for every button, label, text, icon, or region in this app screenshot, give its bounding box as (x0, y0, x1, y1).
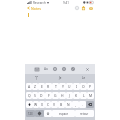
staticText: . (82, 102, 83, 107)
button[interactable]: Format (43, 66, 49, 72)
staticText: L (83, 93, 85, 98)
staticText: R (47, 84, 50, 89)
staticText: O (82, 84, 85, 89)
button[interactable] (44, 110, 52, 117)
staticText: P (89, 84, 92, 89)
button[interactable]: . (79, 101, 86, 108)
staticText: Le (82, 76, 86, 80)
staticText: F (48, 93, 50, 98)
button[interactable]: Close (84, 66, 90, 72)
button[interactable]: Camera (70, 66, 76, 72)
button[interactable]: D (38, 92, 45, 99)
button[interactable]: Markup (61, 66, 67, 72)
button[interactable]: B (58, 101, 65, 108)
staticText: A (28, 84, 31, 89)
staticText: U (68, 84, 71, 89)
staticText: E (41, 84, 43, 89)
staticText: Q (28, 93, 31, 98)
staticText: T (55, 84, 57, 89)
staticText: C (47, 102, 50, 107)
staticText: S (34, 93, 36, 98)
button[interactable]: Y (59, 83, 66, 90)
button[interactable]: J (66, 92, 73, 99)
button[interactable]: F (45, 92, 52, 99)
staticText: , (75, 102, 76, 107)
button[interactable]: K (73, 92, 80, 99)
button[interactable]: N (65, 101, 72, 108)
button[interactable]: H (59, 92, 66, 99)
button[interactable]: V (51, 101, 58, 108)
button[interactable]: Notes (25, 5, 43, 11)
staticText: espace (59, 112, 69, 116)
button[interactable]: E (38, 83, 45, 90)
staticText: J (69, 93, 70, 98)
button[interactable] (26, 101, 33, 108)
staticText: D (40, 93, 43, 98)
button[interactable]: , (72, 101, 79, 108)
button[interactable]: "J" (25, 74, 49, 82)
button[interactable]: Compose (87, 5, 94, 11)
staticText: G (54, 93, 57, 98)
staticText: "J" (35, 76, 39, 80)
staticText: 123 (28, 112, 33, 116)
button[interactable]: Je (49, 74, 72, 82)
staticText: N (67, 102, 70, 107)
staticText: Notes (31, 6, 41, 11)
button[interactable]: M (87, 92, 94, 99)
staticText: M (89, 93, 93, 98)
button[interactable]: espace (52, 110, 75, 117)
staticText: retour (80, 112, 89, 116)
button[interactable]: Delete (86, 101, 94, 108)
staticText: X (41, 102, 43, 107)
staticText: 9:41 (63, 1, 69, 5)
staticText: K (75, 93, 78, 98)
button[interactable]: Checklist (52, 66, 58, 72)
button[interactable]: R (45, 83, 52, 90)
staticText: Y (62, 84, 64, 89)
button[interactable]: W (33, 101, 39, 108)
button[interactable]: U (66, 83, 73, 90)
staticText: V (53, 102, 56, 107)
staticText: I (76, 84, 78, 89)
staticText: Z (34, 84, 36, 89)
button[interactable]: Q (26, 92, 32, 99)
button[interactable]: Z (32, 83, 38, 90)
staticText: B (60, 102, 63, 107)
button[interactable]: Share (80, 5, 87, 11)
staticText: Research (33, 1, 46, 5)
button[interactable]: I (73, 83, 80, 90)
button[interactable]: S (32, 92, 38, 99)
staticText: H (61, 93, 64, 98)
staticText: W (34, 102, 38, 107)
staticText: Aa (44, 67, 48, 71)
button[interactable]: retour (75, 110, 94, 117)
button[interactable]: T (52, 83, 59, 90)
button[interactable]: L (80, 92, 87, 99)
button[interactable]: P (87, 83, 94, 90)
button[interactable]: O (80, 83, 87, 90)
button[interactable]: Le (72, 74, 95, 82)
button[interactable]: Emoji (35, 110, 44, 117)
button[interactable]: More (73, 5, 80, 11)
staticText: Je (59, 76, 62, 80)
button[interactable]: X (39, 101, 45, 108)
button[interactable]: C (45, 101, 51, 108)
button[interactable]: G (52, 92, 59, 99)
button[interactable]: Numbers (26, 110, 35, 117)
button[interactable]: A (26, 83, 32, 90)
button[interactable]: Table (34, 66, 40, 72)
